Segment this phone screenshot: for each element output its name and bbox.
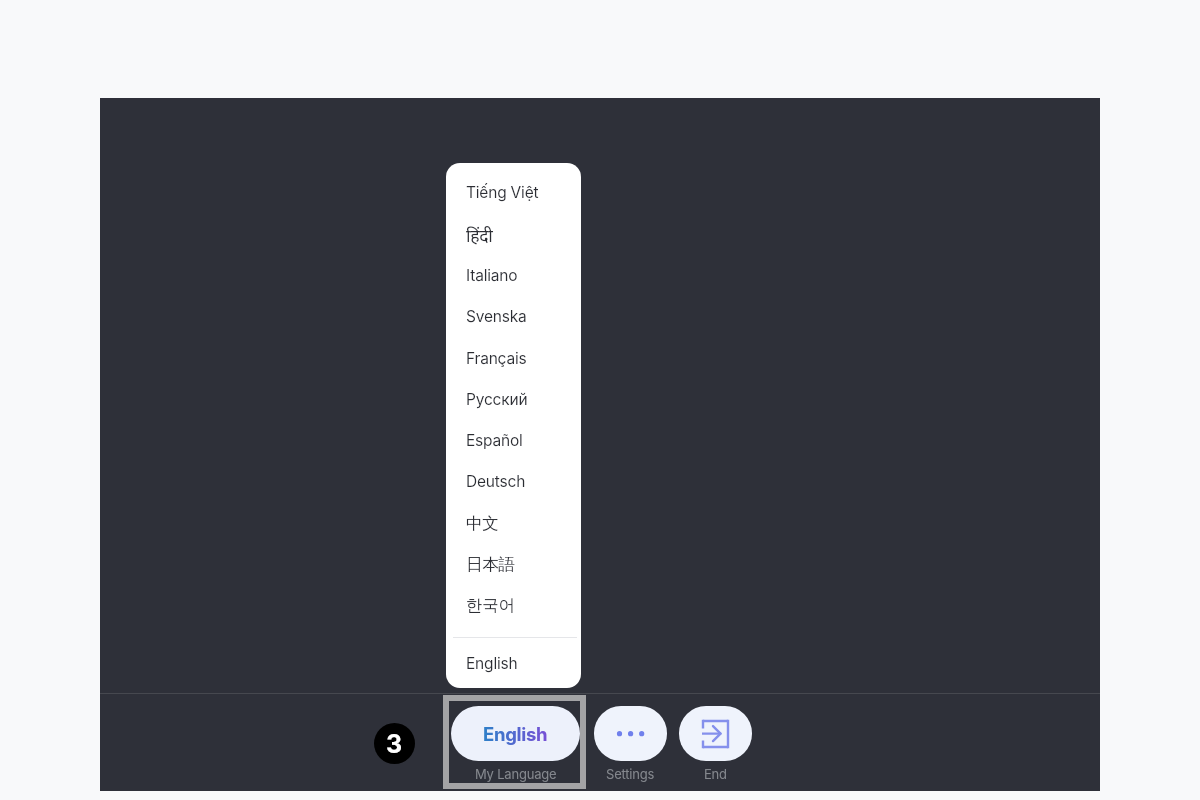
staticText: End [704, 766, 727, 782]
staticText: Tiếng Việt [466, 183, 539, 202]
button[interactable]: English [446, 643, 581, 684]
staticText: My Language [475, 766, 557, 782]
button[interactable]: 中文 [446, 503, 581, 544]
staticText: Settings [606, 766, 655, 782]
staticText: English [466, 654, 518, 673]
button[interactable] [594, 706, 667, 761]
button[interactable]: 한국어 [446, 585, 581, 626]
button[interactable]: Русский [446, 379, 581, 420]
staticText: Deutsch [466, 472, 526, 491]
button[interactable]: Svenska [446, 296, 581, 337]
button[interactable]: Español [446, 420, 581, 461]
button[interactable] [679, 706, 752, 761]
staticText: Français [466, 349, 527, 368]
staticText: Русский [466, 390, 528, 409]
staticText: 3 [386, 729, 403, 759]
button[interactable]: English [451, 706, 580, 761]
button[interactable]: 日本語 [446, 544, 581, 585]
button[interactable]: Français [446, 338, 581, 379]
button[interactable]: Tiếng Việt [446, 172, 581, 213]
staticText: 한국어 [466, 595, 515, 616]
staticText: Español [466, 431, 523, 450]
staticText: हिंदी [466, 223, 493, 247]
staticText: English [483, 723, 548, 745]
staticText: 中文 [466, 513, 499, 534]
staticText: 日本語 [466, 554, 515, 575]
staticText: Svenska [466, 307, 527, 326]
staticText: Italiano [466, 266, 518, 285]
button[interactable]: Deutsch [446, 461, 581, 502]
button[interactable]: Italiano [446, 255, 581, 296]
button[interactable]: हिंदी [446, 214, 581, 255]
